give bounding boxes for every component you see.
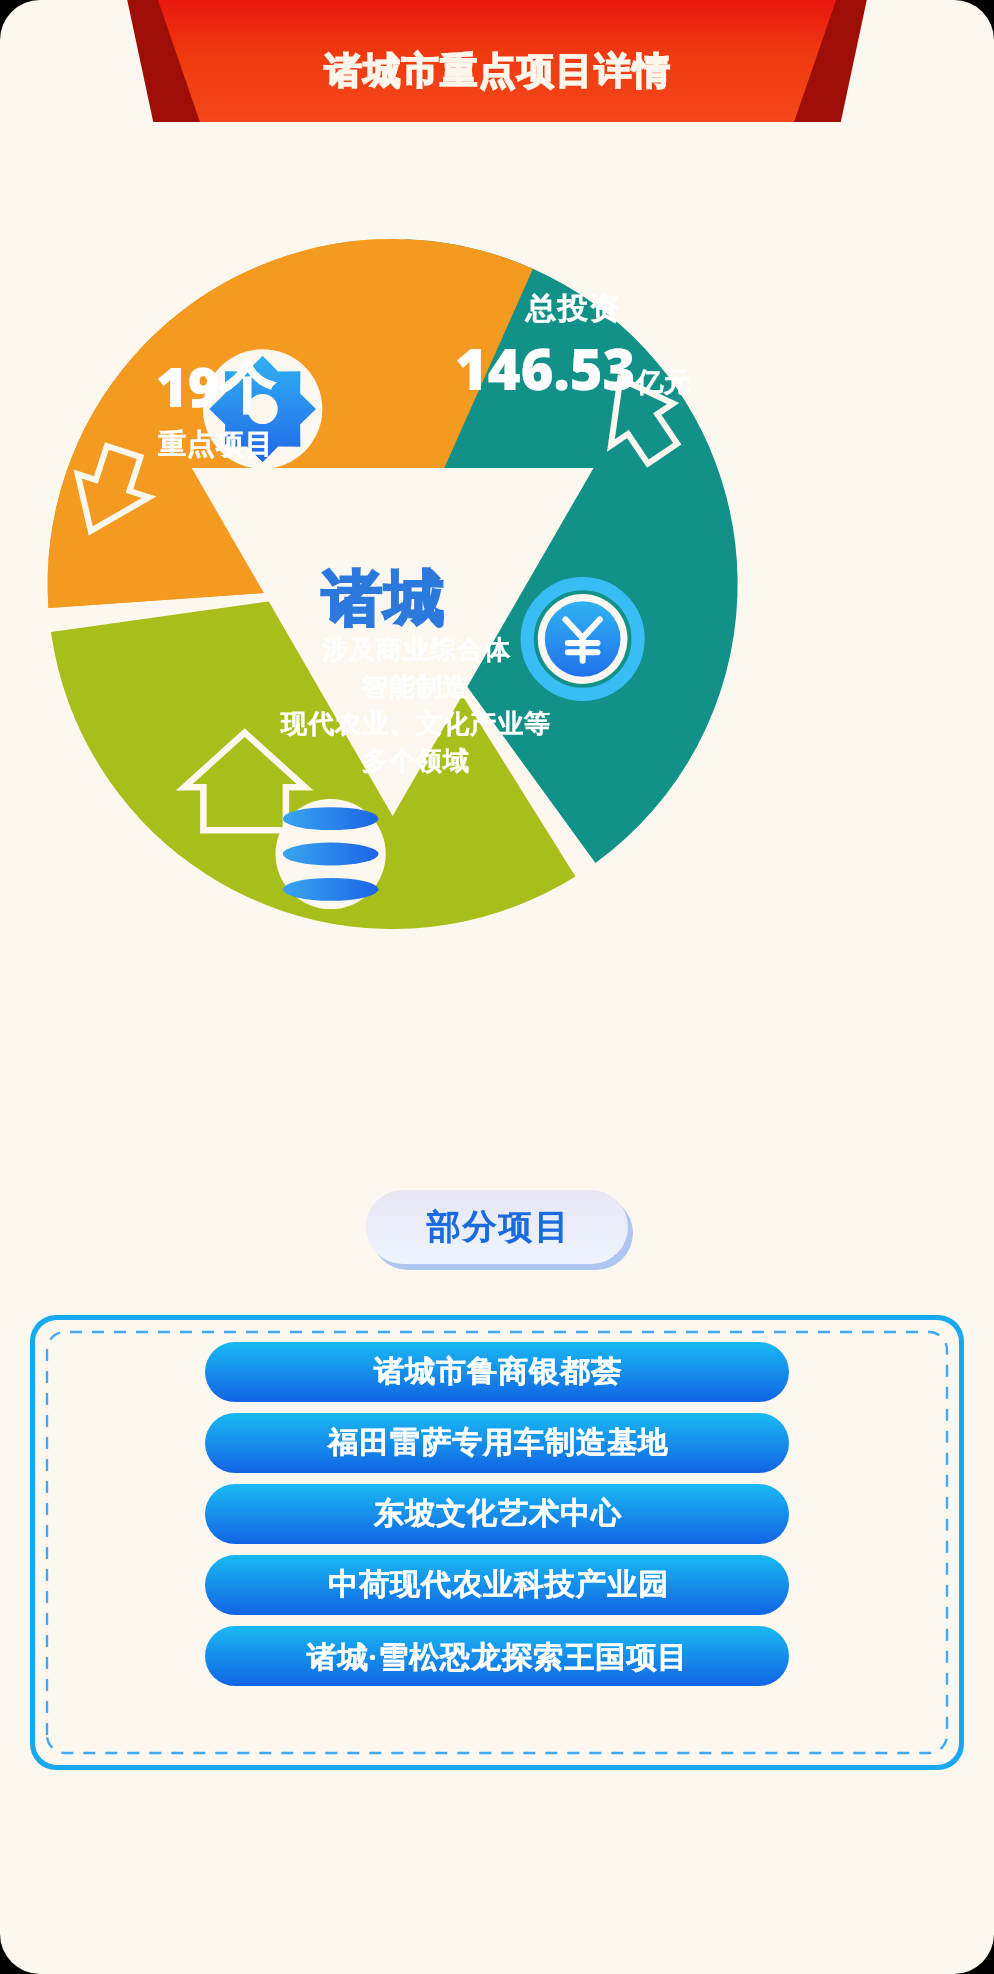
staticText: 现代农业、文化产业等: [280, 708, 550, 741]
staticText: 亿元: [636, 366, 690, 400]
staticText: 多个领域: [361, 745, 469, 778]
staticText: 智能制造: [361, 671, 469, 704]
button[interactable]: 福田雷萨专用车制造基地: [205, 1413, 789, 1473]
button[interactable]: 诸城市重点项目详情: [0, 0, 994, 122]
button[interactable]: 东坡文化艺术中心: [205, 1484, 789, 1544]
staticText: 19个: [156, 349, 274, 423]
staticText: 东坡文化艺术中心: [373, 1495, 621, 1533]
staticText: 诸城市鲁商银都荟: [373, 1353, 621, 1391]
staticText: 诸城: [320, 562, 444, 638]
staticText: 中荷现代农业科技产业园: [327, 1566, 668, 1604]
staticText: 福田雷萨专用车制造基地: [327, 1424, 668, 1462]
staticText: 涉及商业综合体: [321, 634, 510, 667]
staticText: 部分项目: [425, 1206, 569, 1249]
button[interactable]: 中荷现代农业科技产业园: [205, 1555, 789, 1615]
staticText: 总投资: [524, 290, 620, 328]
button[interactable]: 诸城市鲁商银都荟: [205, 1342, 789, 1402]
button[interactable]: 重点项目概览图: [0, 122, 994, 1182]
button[interactable]: 部分项目: [366, 1190, 628, 1264]
staticText: 重点项目: [157, 427, 273, 462]
staticText: 诸城·雪松恐龙探索王国项目: [306, 1636, 688, 1677]
staticText: 146.53: [455, 330, 636, 406]
button[interactable]: 诸城·雪松恐龙探索王国项目: [205, 1626, 789, 1686]
staticText: 诸城市重点项目详情: [324, 48, 671, 95]
